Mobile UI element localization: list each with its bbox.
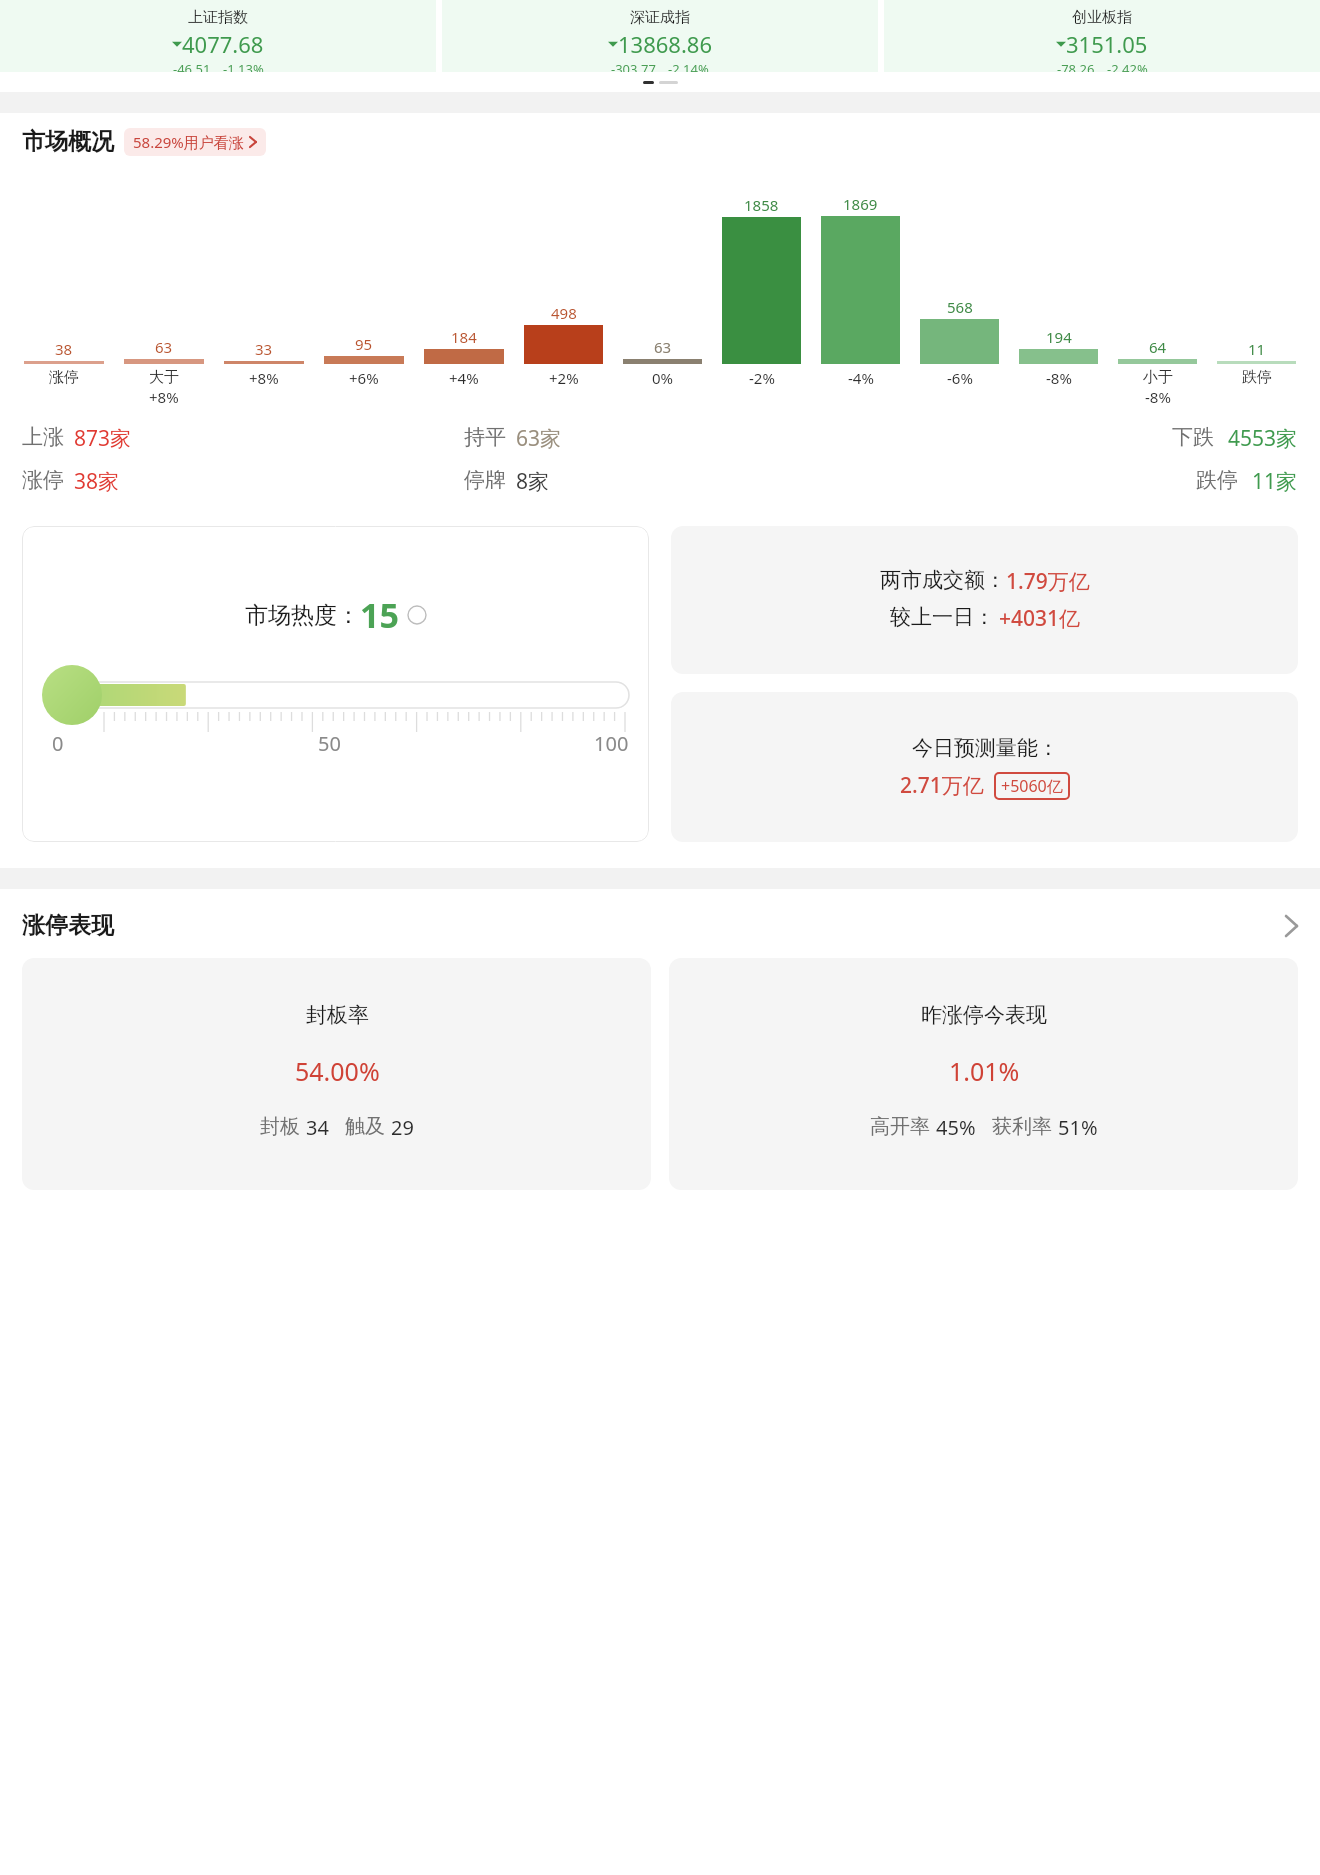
staticText: 184 <box>451 327 477 347</box>
staticText: 触及 <box>345 1114 385 1139</box>
staticText: 2.71万亿 <box>900 771 984 800</box>
staticText: 跌停 <box>1242 368 1272 387</box>
staticText: 38家 <box>74 467 120 496</box>
staticText: 3151.05 <box>1066 29 1148 59</box>
staticText: +6% <box>349 368 379 388</box>
button[interactable]: 市场热度： <box>22 526 649 842</box>
staticText: 38 <box>55 339 73 359</box>
staticText: 上证指数 <box>188 8 248 27</box>
staticText: +8% <box>249 368 279 388</box>
staticText: 较上一日： <box>890 604 995 630</box>
staticText: 63 <box>155 337 173 357</box>
staticText: 涨停 <box>22 467 64 493</box>
button[interactable]: 封板率 <box>22 958 651 1190</box>
button[interactable]: 今日预测量能： <box>671 692 1298 842</box>
staticText: -2.42% <box>1107 60 1148 72</box>
staticText: -78.26 <box>1057 60 1095 72</box>
staticText: 两市成交额： <box>880 567 1006 593</box>
staticText: 涨停表现 <box>22 911 114 940</box>
staticText: -2.14% <box>668 60 709 72</box>
button[interactable]: 涨停表现 <box>0 911 1320 940</box>
staticText: 深证成指 <box>630 8 690 27</box>
button[interactable]: 58.29%用户看涨 <box>124 128 266 156</box>
staticText: +8% <box>149 387 179 407</box>
staticText: 15 <box>360 592 399 638</box>
staticText: 63 <box>654 337 672 357</box>
staticText: 市场热度： <box>245 601 360 630</box>
staticText: 封板 <box>260 1114 300 1139</box>
staticText: 大于 <box>149 368 179 387</box>
staticText: 0 <box>52 730 64 757</box>
staticText: 1869 <box>843 194 878 214</box>
staticText: 小于 <box>1143 368 1173 387</box>
staticText: 停牌 <box>464 467 506 493</box>
staticText: 4077.68 <box>182 29 264 59</box>
staticText: 29 <box>391 1114 414 1141</box>
button[interactable]: 深证成指 <box>442 0 878 72</box>
staticText: 498 <box>551 303 577 323</box>
button[interactable]: 昨涨停今表现 <box>669 958 1298 1190</box>
other: 帮助 <box>407 605 427 625</box>
staticText: 11 <box>1248 339 1266 359</box>
staticText: 63家 <box>516 424 562 453</box>
staticText: +4% <box>449 368 479 388</box>
staticText: +4031亿 <box>999 604 1081 633</box>
staticText: -6% <box>947 368 973 388</box>
staticText: 95 <box>355 334 373 354</box>
staticText: -8% <box>1145 387 1171 407</box>
staticText: 568 <box>947 297 973 317</box>
staticText: 0% <box>652 368 674 388</box>
staticText: -8% <box>1046 368 1072 388</box>
button[interactable]: 两市成交额： <box>671 526 1298 674</box>
staticText: 64 <box>1149 337 1167 357</box>
staticText: 873家 <box>74 424 132 453</box>
staticText: +5060亿 <box>1001 775 1063 797</box>
staticText: 58.29%用户看涨 <box>133 132 244 152</box>
staticText: 创业板指 <box>1072 8 1132 27</box>
staticText: -1.13% <box>223 60 264 72</box>
staticText: -46.51 <box>173 60 211 72</box>
staticText: 跌停 <box>1196 467 1238 493</box>
staticText: 11家 <box>1252 467 1298 496</box>
staticText: 45% <box>936 1114 976 1141</box>
staticText: 市场概况 <box>22 127 114 156</box>
staticText: -4% <box>848 368 874 388</box>
staticText: 54.00% <box>295 1054 380 1088</box>
staticText: 34 <box>306 1114 329 1141</box>
staticText: 昨涨停今表现 <box>921 1002 1047 1028</box>
staticText: +2% <box>549 368 579 388</box>
staticText: 封板率 <box>306 1002 369 1028</box>
staticText: 上涨 <box>22 424 64 450</box>
button[interactable]: 上证指数 <box>0 0 436 72</box>
staticText: 下跌 <box>1172 424 1214 450</box>
staticText: 1.01% <box>949 1054 1020 1088</box>
staticText: 获利率 <box>992 1114 1052 1139</box>
button[interactable]: 创业板指 <box>884 0 1320 72</box>
staticText: 高开率 <box>870 1114 930 1139</box>
staticText: 51% <box>1058 1114 1098 1141</box>
staticText: 1858 <box>744 195 779 215</box>
staticText: 50 <box>318 730 341 757</box>
staticText: 33 <box>255 339 273 359</box>
staticText: -2% <box>749 368 775 388</box>
staticText: 涨停 <box>49 368 79 387</box>
staticText: 194 <box>1046 327 1072 347</box>
staticText: 8家 <box>516 467 550 496</box>
staticText: 4553家 <box>1228 424 1298 453</box>
staticText: 1.79万亿 <box>1006 567 1090 596</box>
staticText: 持平 <box>464 424 506 450</box>
staticText: 今日预测量能： <box>912 735 1059 761</box>
staticText: 13868.86 <box>618 29 712 59</box>
staticText: -303.77 <box>611 60 656 72</box>
staticText: 100 <box>594 730 629 757</box>
